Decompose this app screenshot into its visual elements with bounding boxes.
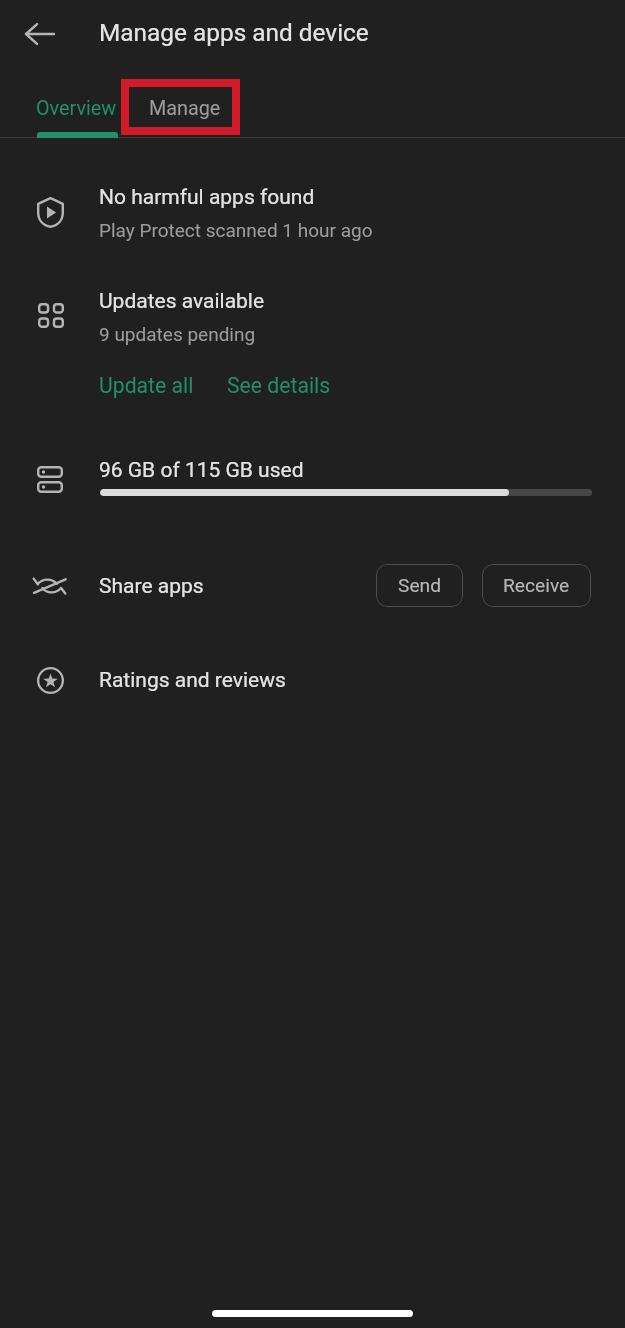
- button[interactable]: Back: [16, 10, 64, 58]
- staticText: Receive: [503, 574, 570, 597]
- button[interactable]: See details: [227, 373, 331, 398]
- staticText: No harmful apps found: [99, 185, 315, 210]
- staticText: 96 GB of 115 GB used: [99, 458, 304, 483]
- staticText: Update all: [99, 373, 194, 398]
- staticText: Manage apps and device: [99, 18, 369, 47]
- staticText: See details: [227, 373, 331, 398]
- staticText: Play Protect scanned 1 hour ago: [99, 219, 373, 241]
- button[interactable]: Receive: [482, 564, 591, 607]
- button[interactable]: Update all: [99, 373, 194, 398]
- staticText: Send: [398, 574, 441, 597]
- button[interactable]: Send: [376, 564, 463, 607]
- staticText: Updates available: [99, 289, 265, 314]
- button[interactable]: Manage: [149, 80, 221, 137]
- button[interactable]: Overview: [0, 80, 153, 137]
- staticText: Overview: [36, 97, 117, 120]
- staticText: Ratings and reviews: [99, 668, 286, 693]
- staticText: Share apps: [99, 574, 204, 599]
- staticText: Manage: [149, 97, 221, 120]
- staticText: 9 updates pending: [99, 323, 256, 345]
